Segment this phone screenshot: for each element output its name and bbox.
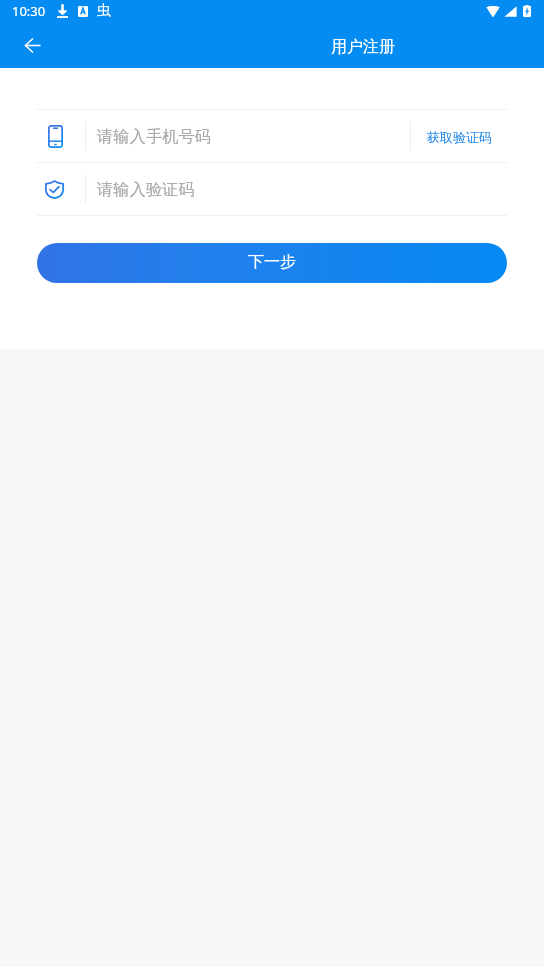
staticText: 10:30 — [12, 2, 46, 20]
button[interactable]: 下一步 — [37, 243, 507, 283]
staticText: 虫 — [97, 2, 111, 20]
staticText: 用户注册 — [331, 37, 395, 57]
staticText: 获取验证码 — [427, 129, 492, 145]
button[interactable]: 请输入验证码 — [37, 163, 507, 215]
button[interactable]: Back — [0, 28, 56, 68]
staticText: 请输入验证码 — [97, 179, 507, 200]
staticText: 下一步 — [248, 252, 296, 272]
button[interactable]: 获取验证码 — [411, 110, 507, 162]
staticText: 请输入手机号码 — [97, 126, 410, 147]
button[interactable]: 请输入手机号码 — [37, 110, 410, 162]
